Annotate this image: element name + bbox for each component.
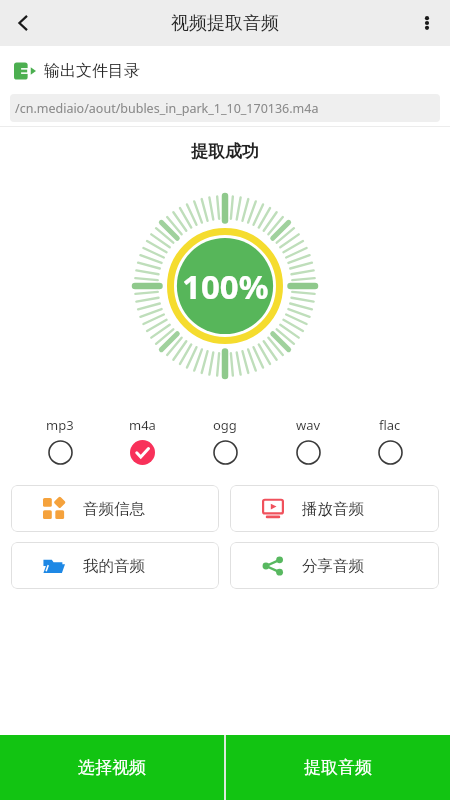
staticText: 播放音频 (302, 499, 364, 519)
button[interactable]: 音频信息 (11, 485, 219, 532)
staticText: ogg (213, 416, 237, 434)
staticText: flac (379, 416, 401, 434)
button[interactable]: m4a (109, 414, 175, 467)
staticText: 音频信息 (83, 499, 145, 519)
button[interactable]: More options (404, 0, 450, 46)
staticText: 输出文件目录 (44, 61, 140, 81)
staticText: mp3 (46, 416, 74, 434)
button[interactable]: 我的音频 (11, 542, 219, 589)
staticText: 提取成功 (0, 141, 450, 162)
button[interactable]: mp3 (27, 414, 93, 467)
button[interactable]: ogg (192, 414, 258, 467)
staticText: 100% (182, 264, 269, 309)
staticText: wav (296, 416, 321, 434)
staticText: m4a (129, 416, 156, 434)
staticText: 视频提取音频 (171, 12, 279, 35)
button[interactable]: wav (275, 414, 341, 467)
button[interactable]: Back (0, 0, 46, 46)
staticText: 选择视频 (78, 757, 146, 778)
staticText: 分享音频 (302, 556, 364, 576)
button[interactable]: 选择视频 (0, 735, 224, 800)
staticText: /cn.mediaio/aout/bubles_in_park_1_10_170… (15, 100, 319, 117)
button[interactable]: flac (357, 414, 423, 467)
staticText: 我的音频 (83, 556, 145, 576)
button[interactable]: 分享音频 (230, 542, 439, 589)
button[interactable]: 播放音频 (230, 485, 439, 532)
button[interactable]: 提取音频 (226, 735, 450, 800)
staticText: 提取音频 (304, 757, 372, 778)
button[interactable]: /cn.mediaio/aout/bubles_in_park_1_10_170… (10, 94, 440, 122)
